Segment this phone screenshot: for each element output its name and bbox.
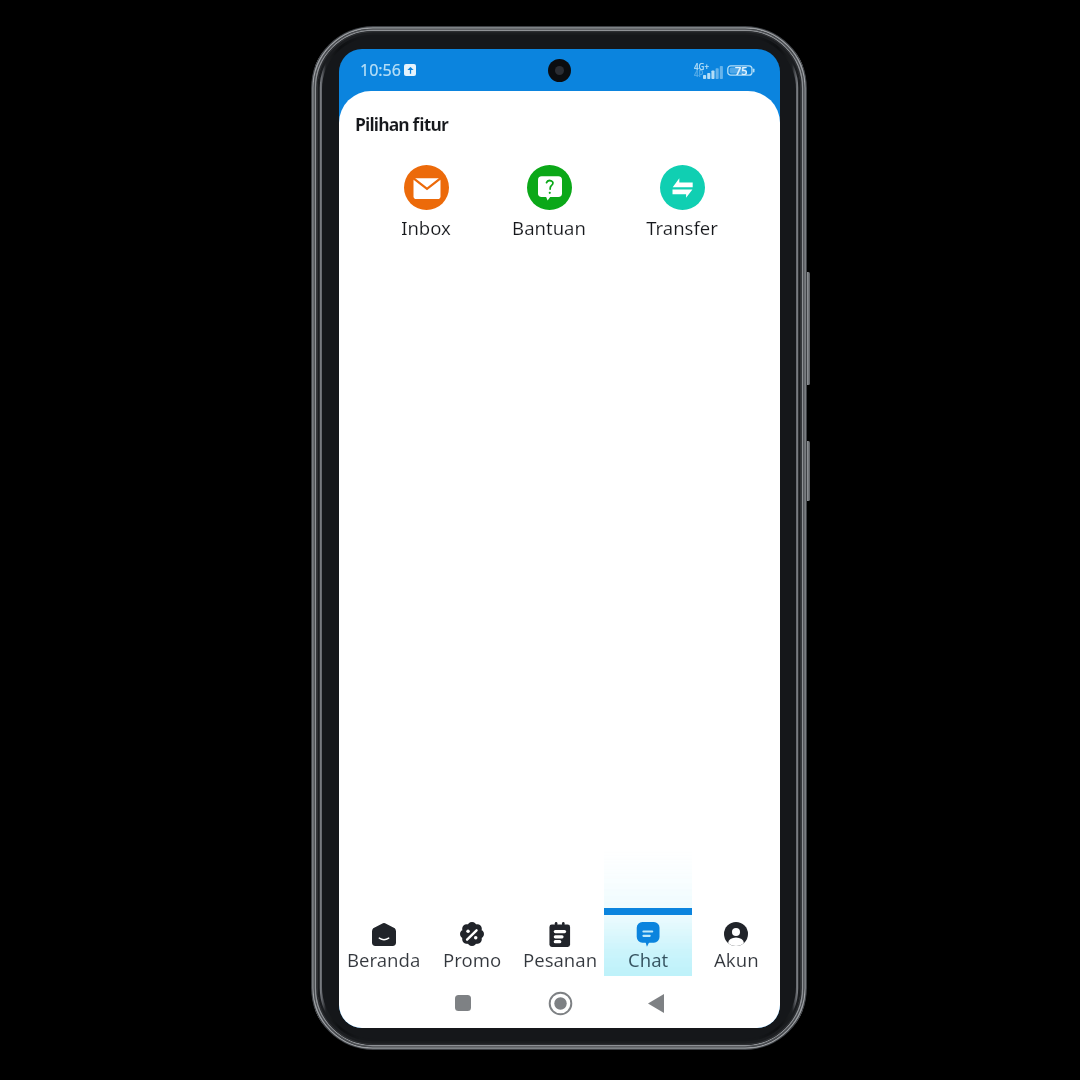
button[interactable]: Promo — [428, 908, 516, 976]
button[interactable]: Recents — [445, 985, 481, 1021]
button[interactable]: Back — [638, 985, 674, 1021]
staticText: 4G+ — [694, 61, 709, 72]
button[interactable]: Akun — [692, 908, 780, 976]
staticText: Inbox — [401, 215, 451, 240]
button[interactable]: Home — [542, 985, 578, 1021]
staticText: 10:56 — [360, 59, 401, 81]
button[interactable]: Inbox — [371, 165, 481, 240]
button[interactable]: Transfer — [627, 165, 737, 240]
staticText: 4P — [694, 68, 704, 79]
staticText: Chat — [628, 947, 669, 972]
staticText: Bantuan — [512, 215, 586, 240]
staticText: 75 — [735, 63, 748, 78]
staticText: Akun — [714, 947, 759, 972]
button[interactable]: Chat — [604, 908, 692, 976]
button[interactable]: Bantuan — [494, 165, 604, 240]
staticText: Pesanan — [523, 947, 598, 972]
staticText: Beranda — [347, 947, 421, 972]
button[interactable]: Pesanan — [516, 908, 604, 976]
staticText: Promo — [443, 947, 502, 972]
button[interactable]: Beranda — [339, 908, 428, 976]
staticText: Transfer — [646, 215, 718, 240]
staticText: Pilihan fitur — [355, 112, 448, 136]
